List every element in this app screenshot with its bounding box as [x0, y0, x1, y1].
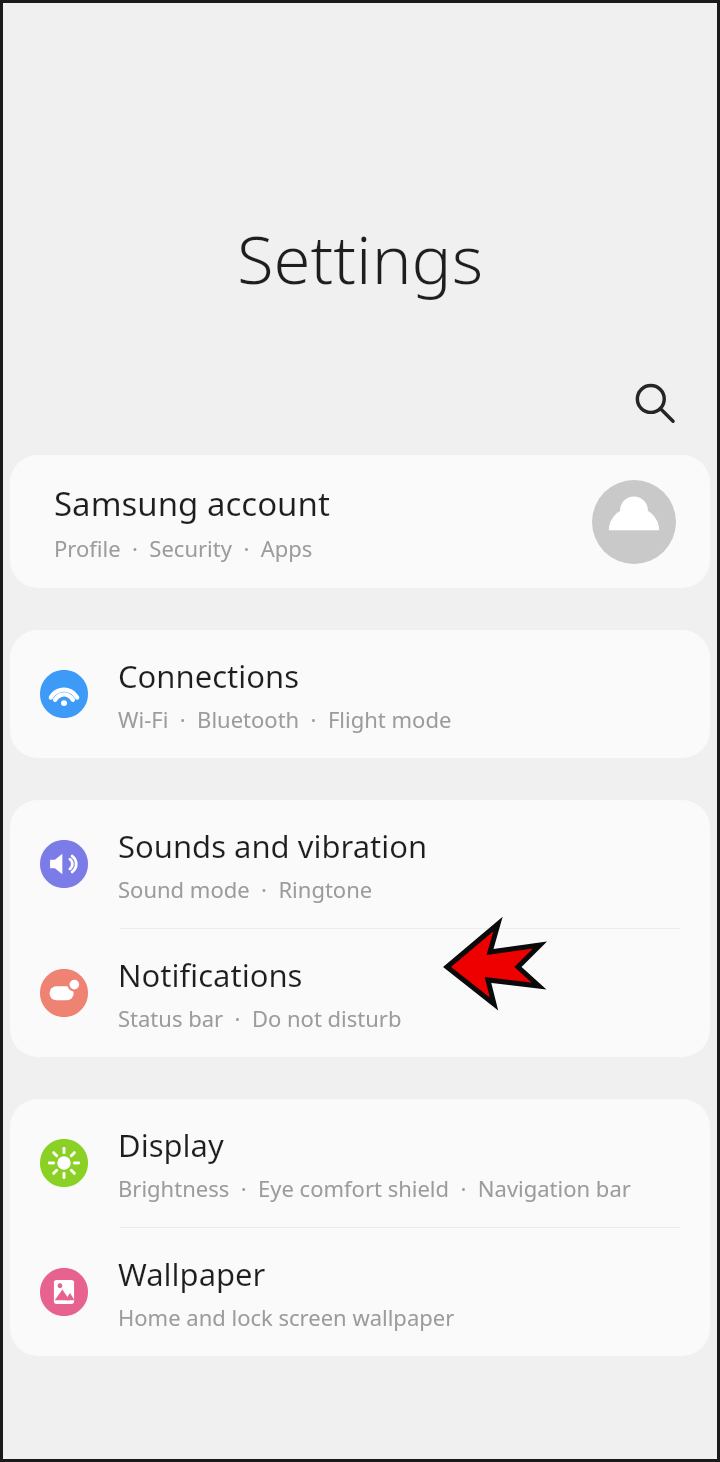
button[interactable]: Samsung account: [10, 455, 710, 588]
button[interactable]: Notifications: [10, 929, 710, 1057]
button[interactable]: Wallpaper: [10, 1228, 710, 1356]
staticText: Wi-Fi · Bluetooth · Flight mode: [118, 704, 452, 734]
button[interactable]: Display: [10, 1099, 710, 1227]
staticText: Samsung account: [54, 481, 330, 526]
staticText: Connections: [118, 655, 299, 697]
button[interactable]: Connections: [10, 630, 710, 758]
staticText: Notifications: [118, 954, 303, 996]
button[interactable]: Search: [624, 373, 686, 435]
staticText: Sound mode · Ringtone: [118, 874, 373, 904]
staticText: Brightness · Eye comfort shield · Naviga…: [118, 1173, 631, 1203]
staticText: Status bar · Do not disturb: [118, 1003, 402, 1033]
staticText: Home and lock screen wallpaper: [118, 1302, 455, 1332]
staticText: Sounds and vibration: [118, 825, 428, 867]
staticText: Profile · Security · Apps: [54, 533, 313, 563]
staticText: Display: [118, 1124, 224, 1166]
button[interactable]: Sounds and vibration: [10, 800, 710, 928]
staticText: Wallpaper: [118, 1253, 266, 1295]
staticText: Settings: [0, 212, 720, 303]
